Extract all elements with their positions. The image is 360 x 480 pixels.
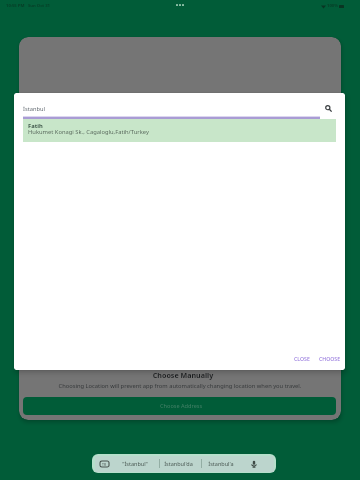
staticText: Choose Address bbox=[160, 402, 203, 410]
staticText: "İstanbul" bbox=[122, 460, 148, 467]
staticText: Fatih bbox=[28, 122, 43, 130]
staticText: Hukumet Konagi Sk., Cagaloglu,Fatih/Turk… bbox=[28, 128, 149, 136]
staticText: Choosing Location will prevent app from … bbox=[19, 382, 341, 390]
staticText: İstanbul bbox=[23, 105, 45, 113]
button[interactable]: Voice input bbox=[246, 454, 262, 473]
staticText: İstanbul'a bbox=[208, 460, 234, 467]
staticText: 100% bbox=[327, 3, 338, 9]
button[interactable]: Fatih bbox=[23, 119, 336, 142]
staticText: CHOOSE bbox=[319, 355, 341, 362]
staticText: Choose Manually bbox=[22, 370, 341, 380]
staticText: TR bbox=[102, 462, 107, 467]
button[interactable]: İstanbul'da bbox=[158, 454, 198, 473]
button[interactable]: Search bbox=[321, 101, 335, 115]
staticText: Sun Oct 31 bbox=[28, 3, 51, 9]
button[interactable]: CLOSE bbox=[290, 350, 313, 366]
button[interactable]: "İstanbul" bbox=[115, 454, 155, 473]
button[interactable]: Keyboard language TR bbox=[95, 454, 114, 473]
staticText: İstanbul'da bbox=[164, 460, 193, 467]
button[interactable]: İstanbul'a bbox=[201, 454, 241, 473]
staticText: 10:55 PM bbox=[6, 3, 25, 9]
button[interactable]: Choose Address bbox=[23, 397, 336, 415]
staticText: CLOSE bbox=[294, 355, 310, 362]
button[interactable]: CHOOSE bbox=[316, 350, 344, 366]
